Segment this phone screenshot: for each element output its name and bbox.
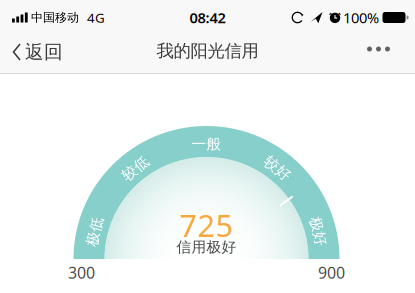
button[interactable]: 返回 (0, 40, 63, 63)
staticText: 较低 (120, 159, 150, 177)
staticText: 一般 (191, 135, 221, 153)
staticText: 信用极好 (176, 238, 236, 256)
staticText: 725 (179, 205, 233, 245)
staticText: 900 (318, 262, 345, 283)
staticText: 300 (68, 262, 95, 283)
staticText: 08:42 (189, 8, 225, 27)
staticText: 100% (343, 8, 379, 27)
staticText: 我的阳光信用 (156, 40, 258, 62)
staticText: 极好 (303, 223, 333, 241)
staticText: 4G (87, 9, 105, 26)
staticText: 返回 (25, 40, 63, 63)
staticText: 极低 (80, 223, 110, 241)
staticText: 中国移动 (31, 10, 79, 25)
button[interactable]: 更多 (367, 38, 415, 65)
staticText: 较好 (262, 159, 292, 177)
